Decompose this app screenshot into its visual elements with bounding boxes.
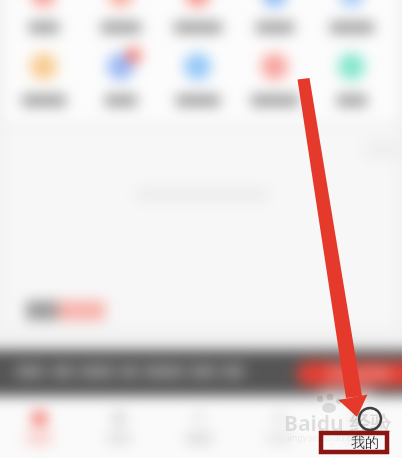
button[interactable] bbox=[261, 0, 288, 7]
staticText: jingyan.baidu.com bbox=[287, 431, 365, 443]
button[interactable] bbox=[184, 53, 211, 80]
button[interactable] bbox=[159, 396, 239, 458]
staticText: Baidu 经验 bbox=[284, 409, 392, 438]
button[interactable] bbox=[184, 0, 211, 7]
button[interactable]: 开始录制 bbox=[297, 362, 402, 386]
button[interactable]: 我的 bbox=[321, 433, 387, 452]
button[interactable] bbox=[30, 53, 57, 80]
button[interactable] bbox=[319, 396, 399, 458]
button[interactable] bbox=[338, 0, 365, 7]
button[interactable] bbox=[107, 0, 134, 7]
button[interactable] bbox=[0, 396, 79, 458]
button[interactable] bbox=[30, 0, 57, 7]
button[interactable] bbox=[107, 53, 134, 80]
button[interactable] bbox=[79, 396, 159, 458]
button[interactable] bbox=[261, 53, 288, 80]
staticText: 开始录制 bbox=[327, 364, 391, 384]
staticText: 我的 bbox=[351, 434, 379, 452]
button[interactable] bbox=[239, 396, 319, 458]
button[interactable] bbox=[338, 53, 365, 80]
